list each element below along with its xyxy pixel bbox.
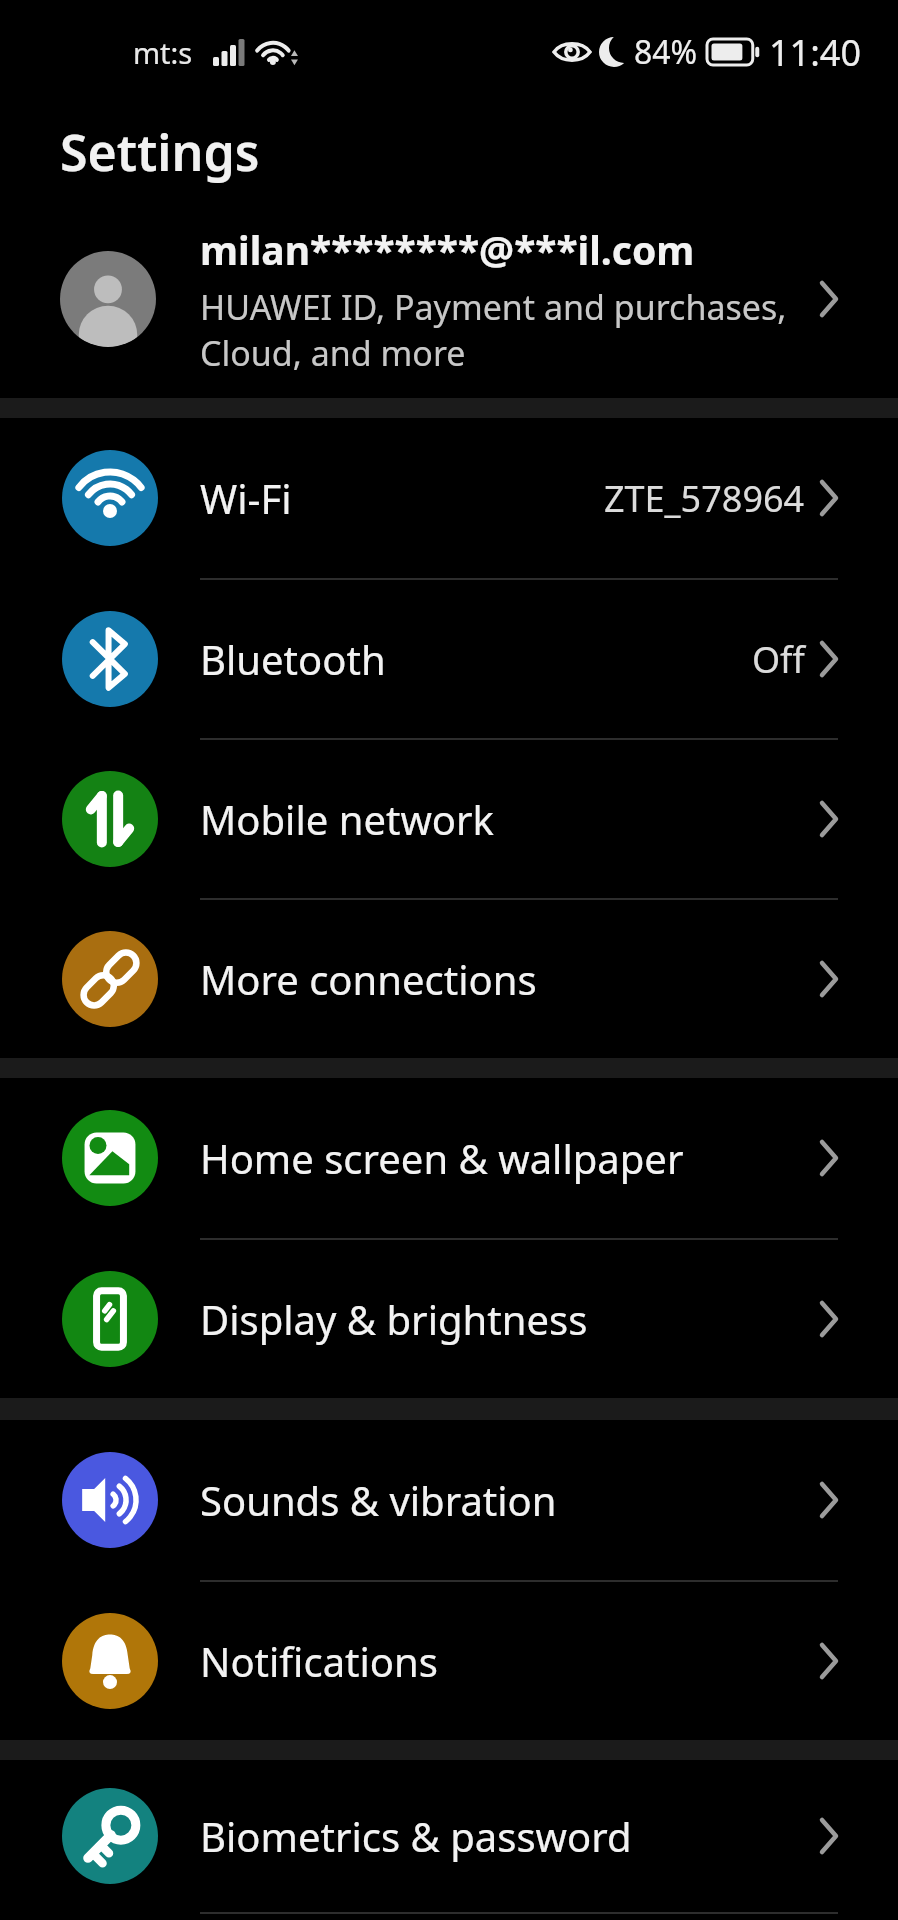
staticText: 84% (634, 30, 698, 74)
staticText: mt:s (133, 33, 193, 72)
staticText: Settings (60, 118, 260, 186)
staticText: More connections (200, 952, 537, 1006)
staticText: Wi-Fi (200, 471, 292, 525)
staticText: milan********@***il.com (200, 223, 695, 276)
staticText: ZTE_578964 (604, 474, 805, 523)
staticText: Bluetooth (200, 632, 386, 686)
staticText: Off (752, 635, 805, 684)
staticText: Mobile network (200, 792, 494, 846)
button[interactable]: Bluetooth (0, 580, 898, 738)
staticText: Display & brightness (200, 1292, 588, 1346)
button[interactable]: More connections (0, 900, 898, 1058)
button[interactable]: Biometrics & password (0, 1760, 898, 1912)
button[interactable]: Mobile network (0, 740, 898, 898)
button[interactable]: Display & brightness (0, 1240, 898, 1398)
button[interactable]: Notifications (0, 1582, 898, 1740)
button[interactable]: milan********@***il.com (0, 200, 898, 398)
staticText: Sounds & vibration (200, 1473, 557, 1527)
button[interactable]: Home screen & wallpaper (0, 1078, 898, 1238)
button[interactable]: Wi-Fi (0, 418, 898, 578)
button[interactable]: Sounds & vibration (0, 1420, 898, 1580)
staticText: 11:40 (769, 28, 862, 77)
staticText: HUAWEI ID, Payment and purchases, Cloud,… (200, 284, 787, 376)
staticText: Biometrics & password (200, 1809, 632, 1863)
staticText: Notifications (200, 1634, 438, 1688)
staticText: Home screen & wallpaper (200, 1131, 684, 1185)
